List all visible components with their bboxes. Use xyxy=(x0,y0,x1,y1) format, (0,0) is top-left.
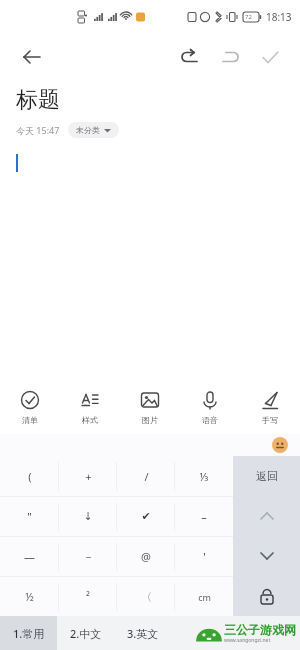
staticText: 图片 xyxy=(142,415,158,425)
button[interactable]: ' xyxy=(175,537,233,576)
button[interactable]: 返回 xyxy=(233,456,300,496)
button[interactable]: Emoji xyxy=(272,437,288,453)
staticText: 清单 xyxy=(22,415,38,425)
button[interactable]: Done xyxy=(250,37,290,77)
button[interactable]: cm xyxy=(175,577,233,616)
staticText: － xyxy=(83,550,94,564)
staticText: 手写 xyxy=(262,415,278,425)
staticText: 语音 xyxy=(202,415,218,425)
button[interactable]: 图片 xyxy=(120,382,180,434)
button[interactable]: + xyxy=(59,456,117,496)
button[interactable]: Back xyxy=(12,37,52,77)
button[interactable]: / xyxy=(117,456,175,496)
staticText: 返回 xyxy=(256,469,278,483)
button[interactable]: — xyxy=(0,537,59,576)
button[interactable]: 3.英文 xyxy=(114,616,171,650)
button[interactable]: 〈 xyxy=(117,577,175,616)
staticText: ' xyxy=(203,549,206,564)
button[interactable]: 手写 xyxy=(240,382,300,434)
staticText: 标题 xyxy=(16,86,60,114)
staticText: 今天 15:47 xyxy=(16,124,60,136)
button[interactable]: – xyxy=(175,497,233,536)
button[interactable]: Redo xyxy=(210,37,250,77)
button[interactable]: 未分类 xyxy=(68,122,119,138)
staticText: – xyxy=(201,509,207,524)
button[interactable]: 1.常用 xyxy=(0,616,57,650)
staticText: 1.常用 xyxy=(13,626,45,641)
button[interactable]: ½ xyxy=(0,577,59,616)
button[interactable]: 语音 xyxy=(180,382,240,434)
button[interactable]: ✔ xyxy=(117,497,175,536)
button[interactable]: ⅓ xyxy=(175,456,233,496)
button[interactable]: 2.中文 xyxy=(57,616,114,650)
staticText: @ xyxy=(141,549,151,564)
button[interactable]: Next xyxy=(233,536,300,576)
staticText: 〈 xyxy=(141,590,152,604)
button[interactable]: Previous xyxy=(233,496,300,536)
button[interactable]: ( xyxy=(0,456,59,496)
button[interactable]: 清单 xyxy=(0,382,60,434)
button[interactable]: － xyxy=(59,537,117,576)
staticText: ✔ xyxy=(141,510,151,523)
staticText: ↓ xyxy=(83,510,93,523)
staticText: 三公子游戏网 xyxy=(224,622,296,637)
staticText: cm xyxy=(198,591,211,603)
staticText: ² xyxy=(86,589,90,604)
button[interactable]: 样式 xyxy=(60,382,120,434)
button[interactable]: ² xyxy=(59,577,117,616)
staticText: — xyxy=(24,549,35,564)
staticText: " xyxy=(27,509,32,524)
staticText: 72 xyxy=(245,13,252,21)
button[interactable]: ↓ xyxy=(59,497,117,536)
staticText: 2.中文 xyxy=(70,626,102,641)
button[interactable] xyxy=(0,152,300,382)
staticText: 18:13 xyxy=(266,10,292,24)
button[interactable]: Lock xyxy=(233,576,300,616)
staticText: ⅓ xyxy=(199,469,209,484)
staticText: / xyxy=(144,469,149,484)
button[interactable]: Undo xyxy=(170,37,210,77)
staticText: 样式 xyxy=(82,415,98,425)
staticText: ( xyxy=(28,469,32,484)
staticText: ½ xyxy=(25,589,34,604)
staticText: + xyxy=(85,469,92,484)
button[interactable]: " xyxy=(0,497,59,536)
staticText: 3.英文 xyxy=(127,626,159,641)
staticText: 未分类 xyxy=(76,125,100,135)
button[interactable]: @ xyxy=(117,537,175,576)
staticText: www.sangongzi.net xyxy=(224,637,271,644)
